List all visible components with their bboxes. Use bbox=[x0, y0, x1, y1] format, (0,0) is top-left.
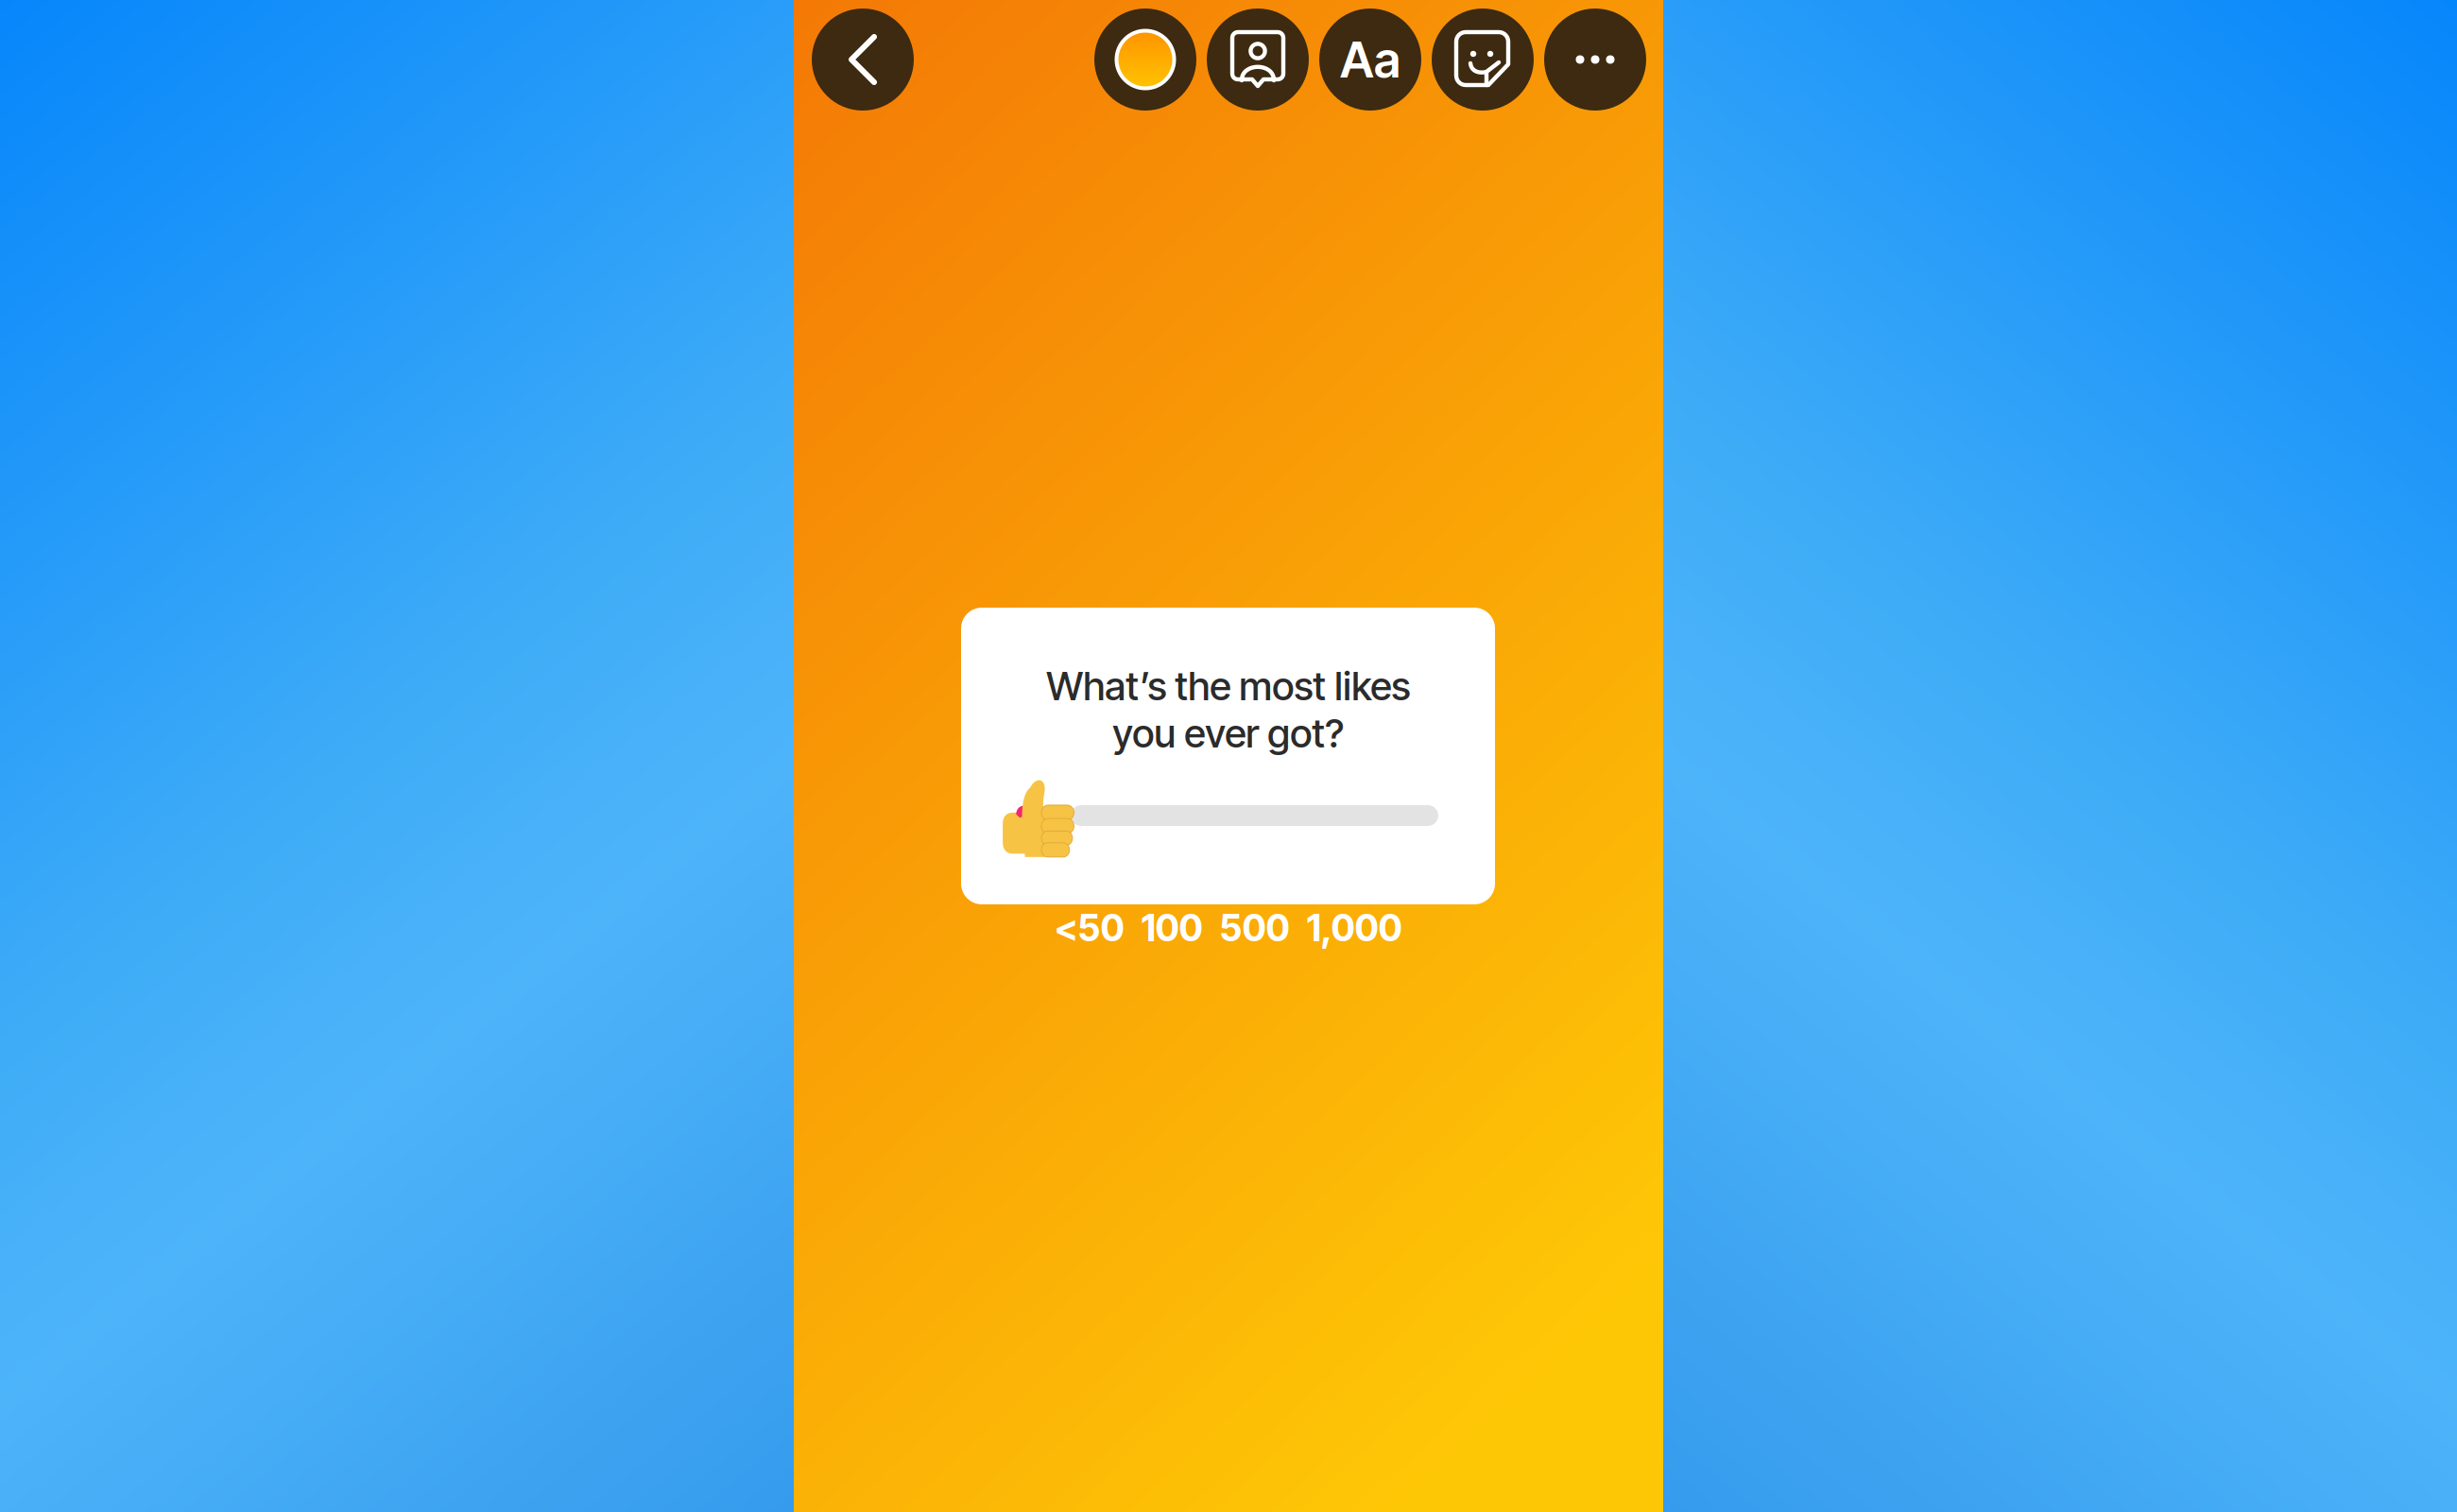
button[interactable]: Emoji slider: What’s the most likes you … bbox=[961, 608, 1495, 947]
button[interactable]: Tag people bbox=[1207, 9, 1309, 111]
button[interactable]: More bbox=[1544, 9, 1646, 111]
staticText: 100 bbox=[1141, 906, 1203, 950]
button[interactable]: Back bbox=[812, 9, 914, 111]
staticText: 1,000 bbox=[1306, 906, 1402, 950]
staticText: <50 bbox=[1054, 906, 1124, 950]
staticText: What’s the most likes you ever got? bbox=[1046, 662, 1410, 757]
staticText: Aa bbox=[1340, 30, 1400, 89]
button[interactable]: Color bbox=[1094, 9, 1196, 111]
staticText: 500 bbox=[1220, 906, 1289, 950]
button[interactable]: Stickers bbox=[1432, 9, 1534, 111]
button[interactable]: Text bbox=[1319, 9, 1421, 111]
